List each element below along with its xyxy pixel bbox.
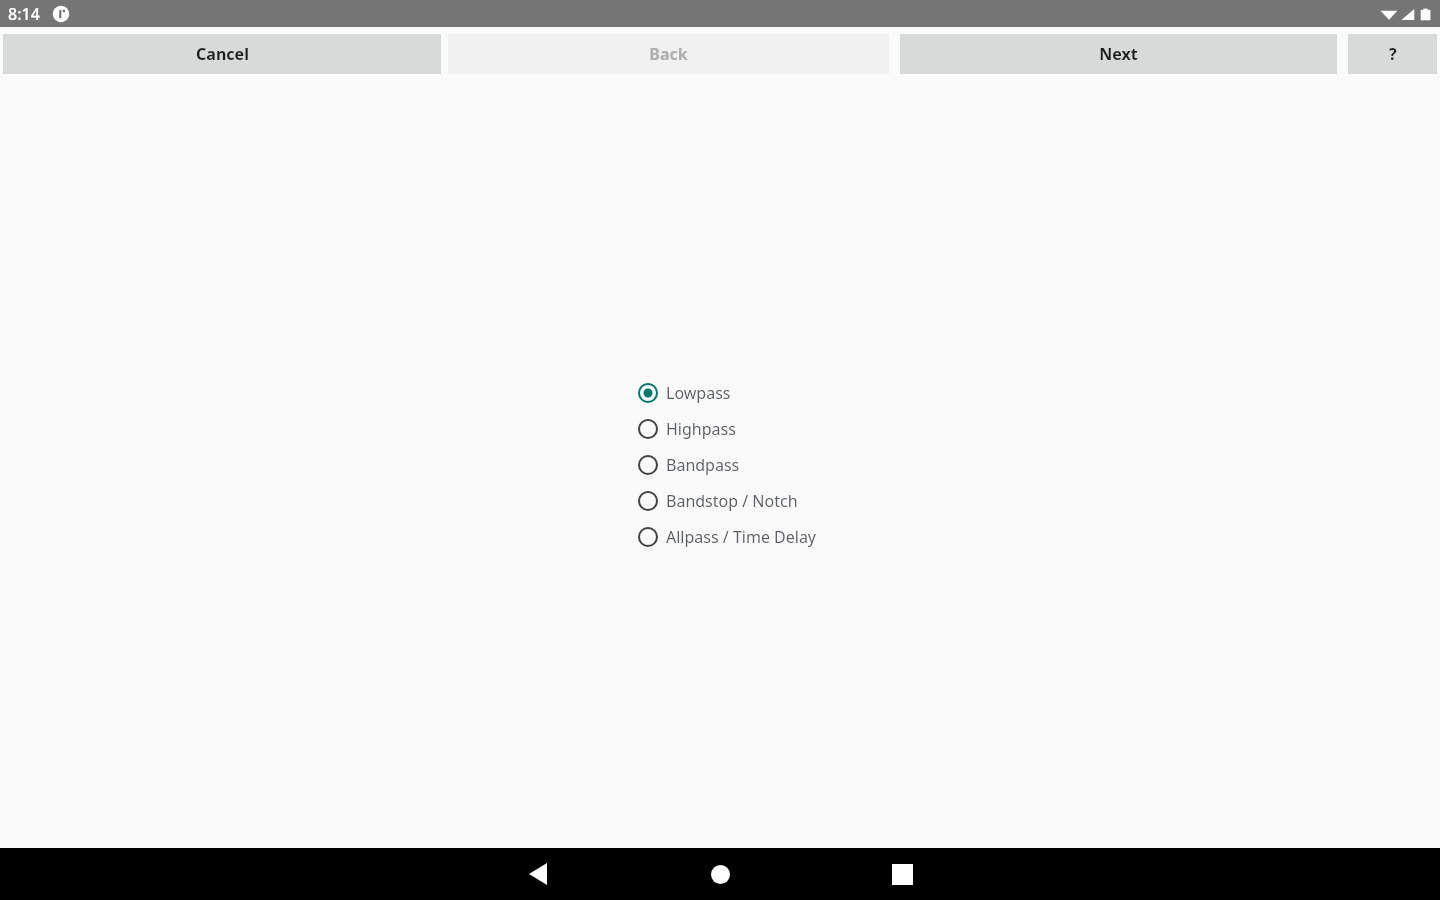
- button[interactable]: Back: [448, 34, 889, 74]
- staticText: Cancel: [196, 43, 249, 65]
- staticText: Next: [1099, 43, 1138, 65]
- button[interactable]: Recent apps: [876, 848, 928, 900]
- staticText: 8:14: [8, 3, 40, 25]
- button[interactable]: Next: [900, 34, 1337, 74]
- staticText: Lowpass: [666, 382, 731, 404]
- staticText: Bandpass: [666, 454, 740, 476]
- button[interactable]: Lowpass: [638, 375, 731, 411]
- button[interactable]: Bandpass: [638, 447, 740, 483]
- staticText: Back: [649, 43, 688, 65]
- button[interactable]: Home: [694, 848, 746, 900]
- button[interactable]: Cancel: [3, 34, 441, 74]
- staticText: Allpass / Time Delay: [666, 526, 817, 548]
- button[interactable]: Help: [1348, 34, 1437, 74]
- staticText: Bandstop / Notch: [666, 490, 798, 512]
- button[interactable]: Back: [512, 848, 564, 900]
- staticText: Highpass: [666, 418, 736, 440]
- button[interactable]: Highpass: [638, 411, 736, 447]
- button[interactable]: Bandstop / Notch: [638, 483, 798, 519]
- button[interactable]: Allpass / Time Delay: [638, 519, 817, 555]
- staticText: ?: [1389, 43, 1397, 65]
